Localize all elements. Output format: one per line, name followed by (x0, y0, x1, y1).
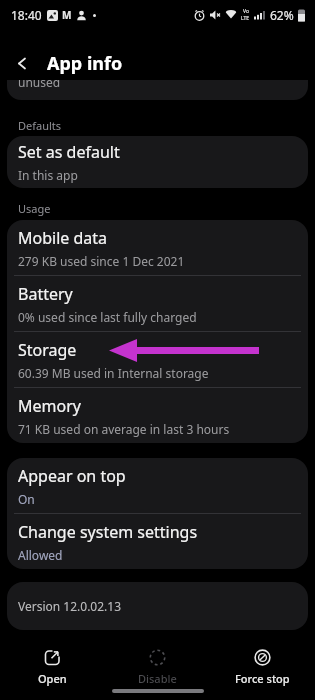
staticText: Memory (18, 395, 81, 417)
staticText: 62% (270, 7, 294, 23)
button[interactable]: Set as default (7, 136, 308, 188)
staticText: Defaults (18, 118, 62, 133)
staticText: Vo (243, 8, 249, 15)
staticText: Storage (18, 339, 77, 361)
staticText: Allowed (18, 547, 63, 563)
staticText: unused (18, 80, 61, 90)
staticText: 0% used since last fully charged (18, 309, 197, 325)
staticText: Change system settings (18, 521, 198, 543)
button[interactable]: Memory (7, 388, 308, 443)
staticText: Set as default (18, 141, 120, 163)
staticText: 60.39 MB used in Internal storage (18, 365, 209, 381)
button[interactable]: Force stop (210, 649, 315, 686)
staticText: App info (47, 51, 123, 76)
button[interactable]: Change system settings (7, 514, 308, 569)
staticText: Disable (138, 671, 177, 686)
staticText: 71 KB used on average in last 3 hours (18, 421, 230, 437)
staticText: On (18, 491, 35, 507)
staticText: 18:40 (11, 7, 42, 23)
button[interactable]: Storage (7, 332, 308, 387)
button[interactable]: Mobile data (7, 220, 308, 275)
staticText: 279 KB used since 1 Dec 2021 (18, 253, 185, 269)
staticText: In this app (18, 167, 78, 183)
button[interactable] (0, 48, 44, 78)
staticText: Mobile data (18, 227, 108, 249)
button[interactable]: Version 12.0.02.13 (7, 582, 308, 630)
button[interactable]: Disable (105, 649, 210, 686)
staticText: M (62, 8, 72, 22)
staticText: Appear on top (18, 465, 126, 487)
staticText: Force stop (235, 671, 290, 686)
button[interactable]: Appear on top (7, 458, 308, 513)
staticText: Battery (18, 283, 73, 305)
button[interactable]: Open (0, 649, 105, 686)
staticText: Version 12.0.02.13 (18, 598, 122, 614)
staticText: Usage (18, 201, 51, 216)
staticText: Open (38, 671, 67, 686)
button[interactable]: Battery (7, 276, 308, 331)
staticText: LTE (241, 15, 250, 22)
